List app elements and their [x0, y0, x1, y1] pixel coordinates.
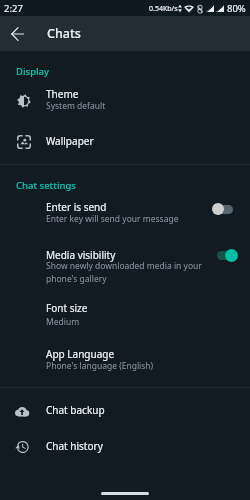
staticText: Medium: [46, 316, 80, 328]
staticText: Show newly downloaded media in your phon…: [46, 260, 202, 285]
staticText: 2:27: [4, 2, 23, 15]
button[interactable]: [0, 196, 250, 230]
staticText: Chat history: [46, 439, 103, 453]
staticText: Enter is send: [46, 200, 107, 214]
staticText: System default: [46, 100, 106, 112]
staticText: 80%: [227, 2, 246, 15]
button[interactable]: [0, 242, 250, 290]
button[interactable]: [0, 297, 250, 329]
staticText: Enter key will send your message: [46, 213, 179, 225]
staticText: Phone's language (English): [46, 360, 154, 372]
button[interactable]: On: [210, 247, 236, 263]
staticText: App Language: [46, 347, 115, 361]
button[interactable]: Off: [210, 201, 236, 217]
button[interactable]: [0, 128, 250, 156]
staticText: Chats: [47, 25, 81, 42]
button[interactable]: Back: [0, 16, 35, 51]
button[interactable]: [0, 84, 250, 114]
button[interactable]: [0, 433, 250, 462]
staticText: Wallpaper: [46, 134, 94, 148]
staticText: 0.54Kb/s: [149, 4, 178, 14]
staticText: Theme: [46, 87, 79, 101]
staticText: Font size: [46, 301, 88, 315]
staticText: Chat settings: [16, 179, 76, 192]
staticText: Display: [16, 65, 50, 78]
button[interactable]: [0, 343, 250, 375]
staticText: Media visibility: [46, 248, 116, 262]
staticText: Chat backup: [46, 403, 105, 417]
button[interactable]: [0, 398, 250, 426]
